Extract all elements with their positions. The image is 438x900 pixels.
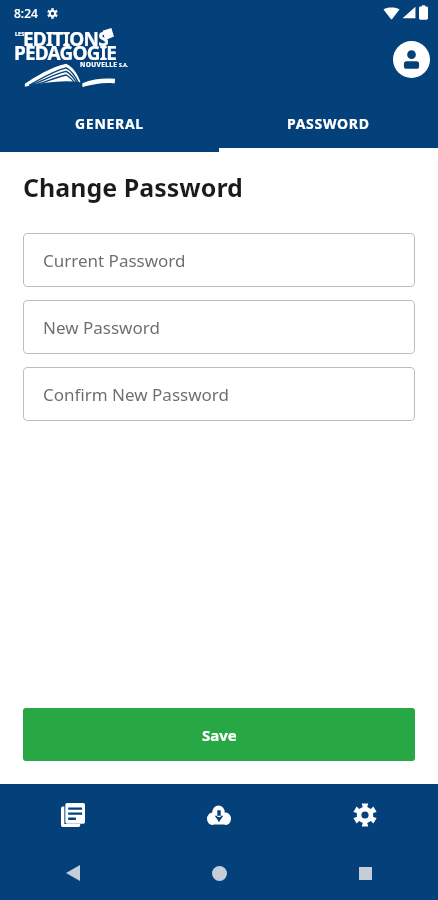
staticText: Current Password (43, 249, 186, 272)
button[interactable]: Save (23, 708, 415, 761)
staticText: LES (15, 30, 25, 37)
staticText: Confirm New Password (43, 383, 229, 406)
button[interactable]: New Password (23, 300, 415, 354)
button[interactable]: Documents (0, 784, 146, 846)
staticText: 8:24 (14, 5, 38, 21)
staticText: EDITIONS (23, 26, 108, 52)
button[interactable]: PASSWORD (219, 98, 438, 148)
button[interactable]: Settings (292, 784, 438, 846)
button[interactable]: Confirm New Password (23, 367, 415, 421)
staticText: PASSWORD (287, 114, 370, 133)
button[interactable]: Downloads (146, 784, 292, 846)
button[interactable]: Account (390, 38, 432, 80)
staticText: Change Password (23, 170, 243, 204)
staticText: S.A. (119, 62, 129, 69)
staticText: New Password (43, 316, 160, 339)
staticText: GENERAL (75, 114, 144, 133)
staticText: PEDAGOGIE (14, 40, 117, 66)
staticText: NOUVELLE (80, 60, 118, 69)
button[interactable]: Current Password (23, 233, 415, 287)
staticText: Save (202, 725, 237, 745)
button[interactable]: GENERAL (0, 98, 219, 148)
